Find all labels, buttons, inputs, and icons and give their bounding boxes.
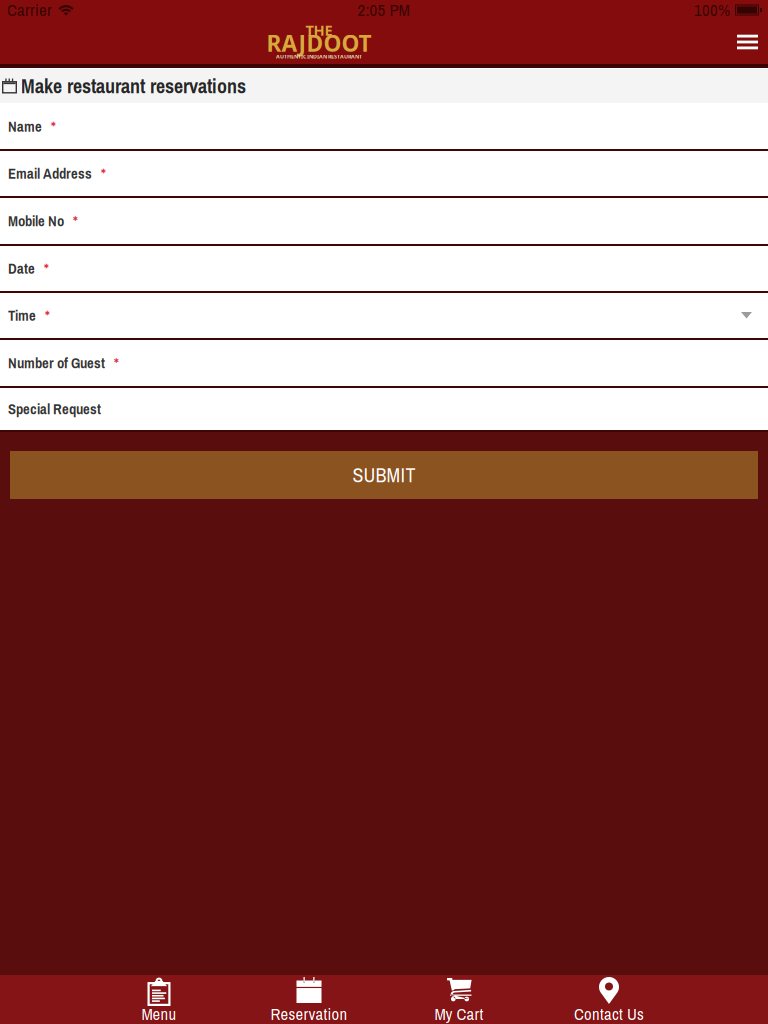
- button[interactable]: Name: [0, 104, 768, 151]
- button[interactable]: Time: [0, 293, 768, 340]
- button[interactable]: Mobile No: [0, 198, 768, 246]
- staticText: *: [36, 306, 50, 325]
- staticText: Mobile No: [8, 211, 64, 231]
- button[interactable]: Email Address: [0, 151, 768, 198]
- staticText: *: [64, 211, 78, 231]
- staticText: Make restaurant reservations: [21, 72, 246, 99]
- button[interactable]: Date: [0, 246, 768, 293]
- staticText: AUTHENTIC INDIAN RESTAURANT: [276, 53, 362, 60]
- button[interactable]: My Cart: [384, 975, 534, 1024]
- staticText: Time: [8, 306, 36, 325]
- staticText: Number of Guest: [8, 353, 105, 373]
- staticText: 2:05 PM: [357, 0, 409, 21]
- button[interactable]: Contact Us: [534, 975, 684, 1024]
- staticText: Reservation: [270, 1003, 347, 1024]
- staticText: *: [35, 259, 49, 278]
- staticText: THE: [305, 20, 332, 40]
- staticText: 100%: [694, 0, 730, 21]
- button[interactable]: Reservation: [234, 975, 384, 1024]
- staticText: Contact Us: [574, 1003, 644, 1024]
- staticText: Name: [8, 117, 42, 136]
- staticText: *: [92, 164, 106, 183]
- staticText: *: [42, 117, 56, 136]
- staticText: *: [105, 353, 119, 373]
- staticText: My Cart: [434, 1003, 483, 1024]
- staticText: Email Address: [8, 164, 92, 183]
- staticText: SUBMIT: [352, 461, 415, 488]
- button[interactable]: Menu: [84, 975, 234, 1024]
- staticText: Date: [8, 259, 35, 278]
- staticText: Carrier: [7, 0, 52, 21]
- staticText: Menu: [141, 1003, 176, 1024]
- button[interactable]: Special Request: [0, 388, 768, 432]
- button[interactable]: Menu: [727, 23, 768, 61]
- button[interactable]: Number of Guest: [0, 340, 768, 388]
- button[interactable]: SUBMIT: [10, 451, 758, 499]
- staticText: RAJDOOT: [266, 28, 371, 58]
- staticText: Special Request: [8, 399, 101, 419]
